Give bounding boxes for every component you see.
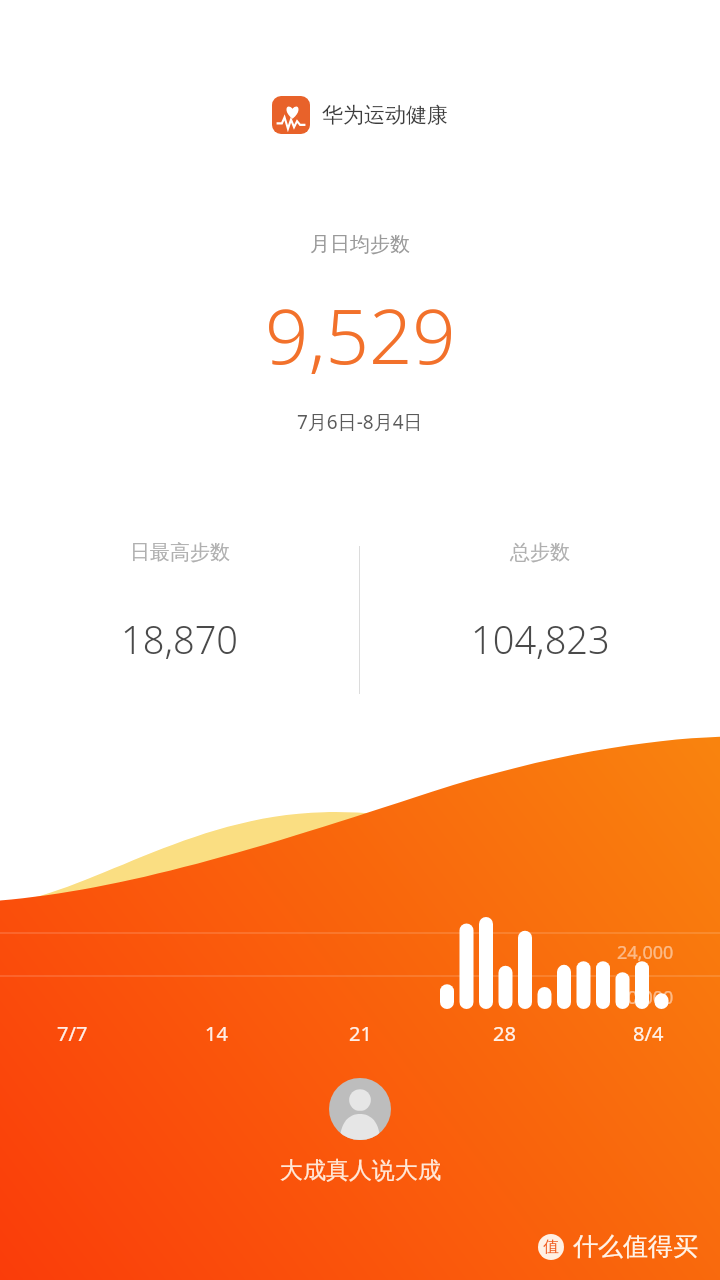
staticText: 日最高步数 (130, 540, 230, 565)
staticText: 18,870 (121, 613, 239, 665)
staticText: 大成真人说大成 (280, 1156, 441, 1185)
button[interactable]: 华为运动健康 (272, 96, 448, 134)
staticText: 21 (349, 1020, 372, 1047)
button[interactable]: 日最高步数 (0, 540, 359, 665)
staticText: 9,529 (265, 283, 456, 387)
staticText: 7月6日-8月4日 (297, 409, 423, 435)
staticText: 月日均步数 (310, 232, 410, 257)
staticText: 14 (205, 1020, 228, 1047)
staticText: 104,823 (471, 613, 610, 665)
staticText: 7/7 (57, 1020, 88, 1047)
staticText: 28 (493, 1020, 516, 1047)
staticText: 24,000 (617, 940, 674, 965)
staticText: 总步数 (510, 540, 570, 565)
staticText: 8/4 (633, 1020, 664, 1047)
button[interactable]: 总步数 (360, 540, 720, 665)
staticText: 什么值得买 (573, 1231, 698, 1262)
staticText: 值 (543, 1237, 559, 1257)
button[interactable]: Profile avatar (329, 1078, 391, 1140)
staticText: 10,000 (617, 985, 674, 1010)
staticText: 华为运动健康 (322, 102, 448, 128)
